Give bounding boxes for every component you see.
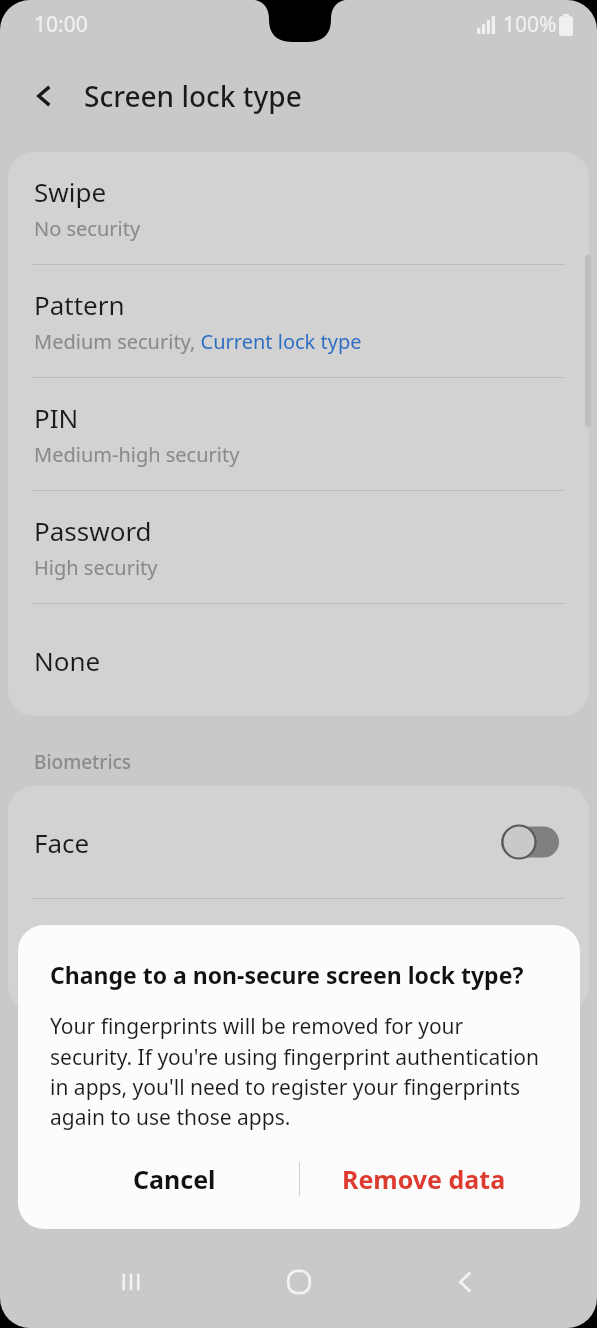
button[interactable]: Pattern (8, 265, 589, 377)
staticText: Swipe (34, 174, 107, 209)
staticText: PIN (34, 400, 79, 435)
button[interactable]: Fingerprints on (501, 937, 559, 973)
staticText: Pattern (34, 287, 125, 322)
button[interactable]: PIN (8, 378, 589, 490)
staticText: No security (34, 215, 141, 242)
staticText: 100% (503, 10, 557, 39)
staticText: Your fingerprints will be removed for yo… (50, 1012, 548, 1131)
button[interactable]: Remove data (299, 1133, 548, 1225)
button[interactable]: Recents (95, 1246, 167, 1318)
button[interactable]: Back (430, 1246, 502, 1318)
staticText: 10:00 (34, 10, 88, 39)
staticText: Medium security, Current lock type (34, 328, 362, 355)
staticText: High security (34, 554, 158, 581)
button[interactable]: Fingerprints (8, 899, 589, 1011)
staticText: Medium-high security (34, 441, 240, 468)
button[interactable]: Face off (501, 824, 559, 860)
button[interactable]: Home (263, 1246, 335, 1318)
staticText: Change to a non-secure screen lock type? (50, 959, 524, 990)
button[interactable]: Back (22, 73, 68, 119)
staticText: Registered (34, 962, 135, 989)
button[interactable]: Face (8, 786, 589, 898)
staticText: Biometrics (34, 749, 132, 775)
button[interactable]: None (8, 604, 589, 716)
staticText: Password (34, 513, 152, 548)
staticText: Remove data (342, 1162, 506, 1196)
staticText: Face (34, 825, 90, 860)
button[interactable]: Cancel (50, 1133, 299, 1225)
staticText: None (34, 643, 101, 678)
button[interactable]: Swipe (8, 152, 589, 264)
staticText: Screen lock type (84, 77, 302, 115)
staticText: Fingerprints (34, 921, 184, 956)
staticText: Cancel (133, 1162, 216, 1196)
button[interactable]: Password (8, 491, 589, 603)
